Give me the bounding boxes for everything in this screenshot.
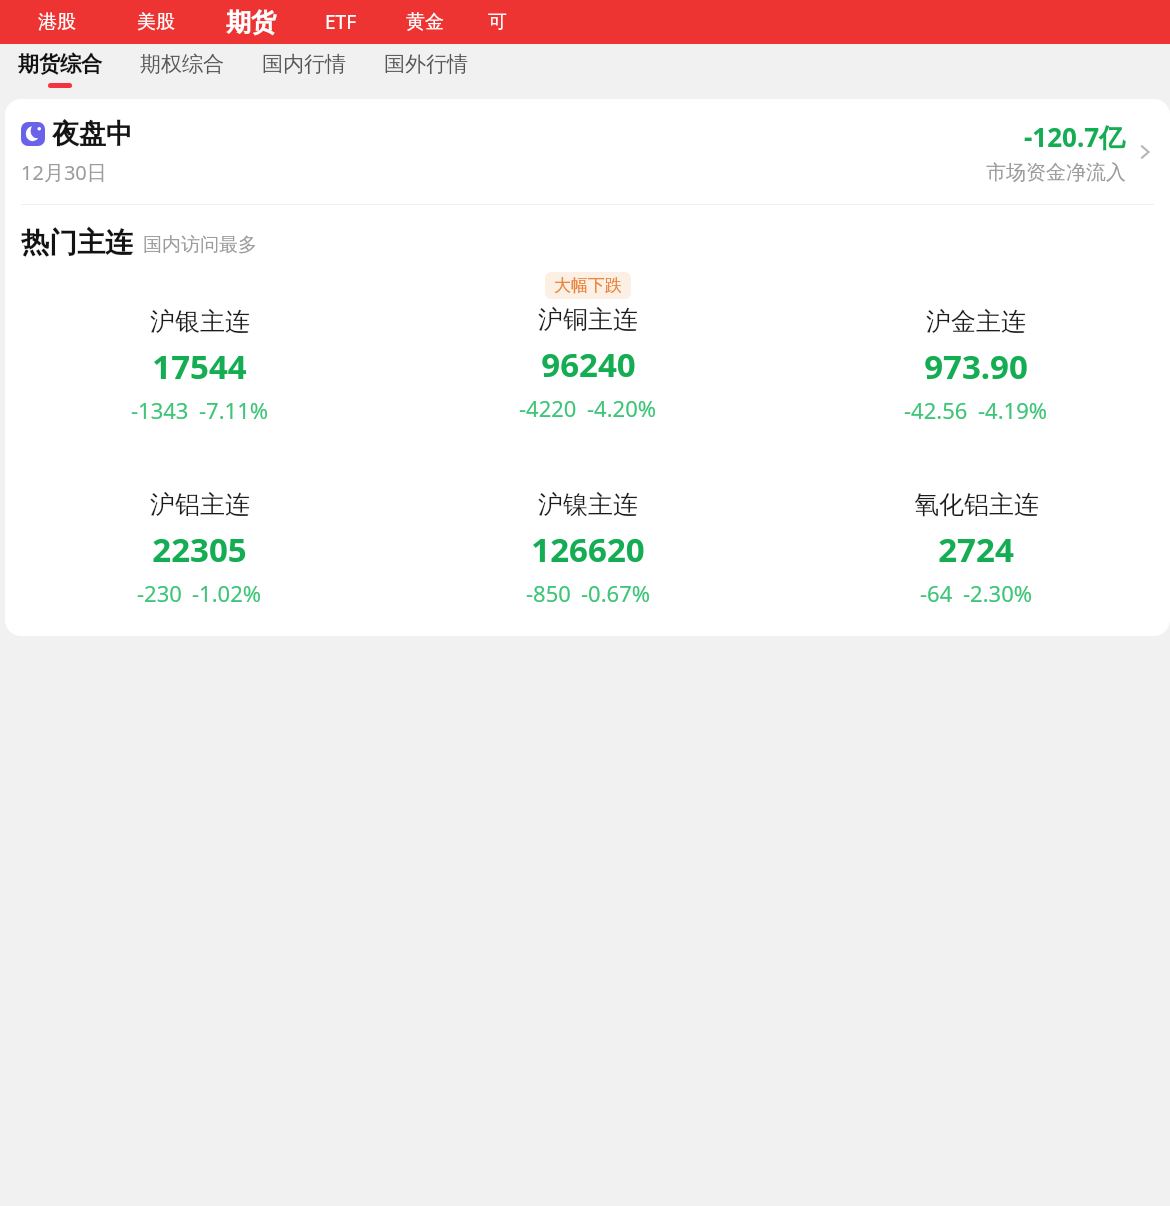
staticText: 市场资金净流入 — [986, 160, 1126, 185]
staticText: 2724 — [938, 527, 1014, 572]
button[interactable]: 黄金 — [404, 8, 446, 36]
button[interactable]: 可 — [486, 8, 509, 36]
staticText: -120.7亿 — [1024, 119, 1126, 155]
staticText: 沪金主连 — [926, 306, 1026, 337]
staticText: -1.02% — [192, 578, 262, 608]
staticText: 96240 — [541, 342, 636, 387]
staticText: -64 — [920, 578, 953, 608]
staticText: -850 — [526, 578, 571, 608]
other: 查看市场资金净流入详情 — [1134, 141, 1156, 163]
staticText: 港股 — [38, 10, 76, 34]
button[interactable]: 期货 — [224, 5, 278, 40]
staticText: 国外行情 — [384, 51, 468, 77]
button[interactable]: 夜盘中 — [5, 99, 1170, 204]
staticText: 沪镍主连 — [538, 489, 638, 520]
staticText: 热门主连 — [21, 225, 133, 260]
button[interactable]: 美股 — [135, 8, 177, 36]
staticText: -4220 — [519, 393, 577, 423]
staticText: -4.20% — [587, 393, 657, 423]
staticText: 22305 — [152, 527, 247, 572]
button[interactable]: 沪镍主连 — [394, 447, 782, 616]
staticText: ETF — [325, 9, 356, 35]
staticText: -230 — [137, 578, 182, 608]
staticText: -1343 — [131, 395, 189, 425]
staticText: 12月30日 — [21, 159, 107, 186]
staticText: 17544 — [152, 344, 247, 389]
staticText: -2.30% — [963, 578, 1033, 608]
button[interactable]: 期权综合 — [136, 44, 228, 83]
staticText: -7.11% — [199, 395, 269, 425]
staticText: 大幅下跌 — [554, 275, 622, 296]
button[interactable]: 沪银主连 — [5, 264, 394, 433]
staticText: 沪银主连 — [150, 306, 250, 337]
staticText: 氧化铝主连 — [914, 489, 1039, 520]
button[interactable]: 沪金主连 — [782, 264, 1170, 433]
staticText: 美股 — [137, 10, 175, 34]
staticText: 可 — [488, 10, 507, 34]
button[interactable]: 大幅下跌 — [394, 264, 782, 431]
staticText: -0.67% — [581, 578, 651, 608]
button[interactable]: 氧化铝主连 — [782, 447, 1170, 616]
button[interactable]: 沪铝主连 — [5, 447, 394, 616]
staticText: 期权综合 — [140, 51, 224, 77]
button[interactable]: 期货综合 — [14, 44, 106, 88]
staticText: 126620 — [531, 527, 645, 572]
staticText: 沪铜主连 — [538, 304, 638, 335]
staticText: -42.56 — [904, 395, 968, 425]
staticText: -4.19% — [978, 395, 1048, 425]
button[interactable]: 港股 — [36, 8, 78, 36]
staticText: 期货 — [226, 7, 276, 38]
staticText: 夜盘中 — [52, 117, 133, 151]
staticText: 国内行情 — [262, 51, 346, 77]
button[interactable]: 国内行情 — [258, 44, 350, 83]
button[interactable]: 国外行情 — [380, 44, 472, 83]
staticText: 973.90 — [924, 344, 1028, 389]
staticText: 黄金 — [406, 10, 444, 34]
staticText: 沪铝主连 — [150, 489, 250, 520]
button[interactable]: ETF — [323, 7, 358, 37]
staticText: 国内访问最多 — [143, 233, 257, 257]
staticText: 期货综合 — [18, 51, 102, 77]
